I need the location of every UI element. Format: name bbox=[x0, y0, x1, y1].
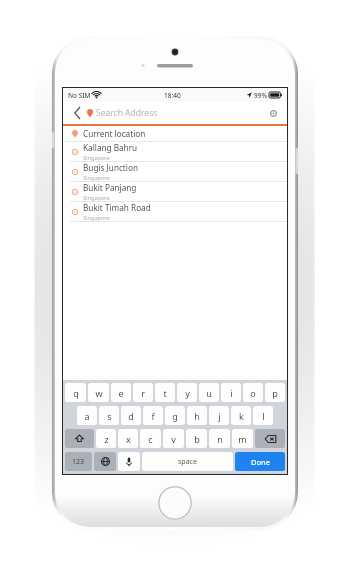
button[interactable]: x bbox=[118, 429, 138, 448]
button[interactable]: Done bbox=[235, 452, 285, 471]
staticText: 99% bbox=[254, 91, 267, 100]
staticText: Bugis Junction bbox=[83, 162, 138, 173]
button[interactable]: Bukit Panjang bbox=[63, 182, 287, 201]
button[interactable]: Bukit Timah Road bbox=[63, 202, 287, 221]
button[interactable]: c bbox=[140, 429, 161, 448]
button[interactable]: r bbox=[133, 383, 153, 402]
button[interactable]: m bbox=[232, 429, 253, 448]
button[interactable]: g bbox=[165, 406, 185, 425]
staticText: v bbox=[171, 433, 176, 445]
button[interactable]: q bbox=[65, 383, 86, 402]
staticText: 18:40 bbox=[164, 91, 181, 100]
button[interactable]: Kallang Bahru bbox=[63, 142, 287, 161]
button[interactable]: h bbox=[187, 406, 207, 425]
button[interactable]: b bbox=[186, 429, 207, 448]
staticText: n bbox=[217, 433, 223, 445]
button[interactable]: Delete bbox=[255, 429, 285, 448]
button[interactable]: u bbox=[199, 383, 219, 402]
button[interactable]: space bbox=[142, 452, 233, 471]
staticText: Kallang Bahru bbox=[83, 142, 138, 153]
staticText: Singapore bbox=[83, 154, 110, 161]
staticText: e bbox=[118, 387, 124, 399]
staticText: u bbox=[206, 387, 212, 399]
button[interactable]: 123 bbox=[65, 452, 92, 471]
staticText: l bbox=[262, 410, 265, 422]
staticText: Done bbox=[251, 457, 270, 467]
button[interactable]: Back bbox=[69, 103, 85, 123]
staticText: Search Address bbox=[96, 107, 265, 119]
button[interactable]: t bbox=[155, 383, 175, 402]
staticText: b bbox=[194, 433, 200, 445]
button[interactable]: Settings bbox=[265, 105, 281, 121]
staticText: f bbox=[151, 410, 155, 422]
staticText: y bbox=[185, 387, 190, 399]
button[interactable]: d bbox=[121, 406, 141, 425]
staticText: k bbox=[239, 410, 244, 422]
button[interactable]: f bbox=[143, 406, 163, 425]
button[interactable]: a bbox=[77, 406, 97, 425]
button[interactable]: l bbox=[253, 406, 273, 425]
button[interactable]: j bbox=[209, 406, 229, 425]
staticText: No SIM bbox=[68, 91, 91, 100]
staticText: w bbox=[95, 387, 103, 399]
staticText: g bbox=[172, 410, 178, 422]
button[interactable]: i bbox=[221, 383, 241, 402]
button[interactable]: n bbox=[209, 429, 230, 448]
button[interactable]: z bbox=[96, 429, 116, 448]
staticText: i bbox=[230, 387, 233, 399]
button[interactable]: Dictate bbox=[118, 452, 140, 471]
staticText: space bbox=[178, 457, 197, 467]
staticText: s bbox=[107, 410, 112, 422]
staticText: Singapore bbox=[83, 174, 110, 181]
staticText: t bbox=[163, 387, 167, 399]
button[interactable]: k bbox=[231, 406, 251, 425]
button[interactable]: o bbox=[243, 383, 263, 402]
staticText: x bbox=[126, 433, 131, 445]
button[interactable]: y bbox=[177, 383, 197, 402]
staticText: q bbox=[73, 387, 79, 399]
button[interactable]: s bbox=[99, 406, 119, 425]
staticText: r bbox=[141, 387, 145, 399]
button[interactable]: Bugis Junction bbox=[63, 162, 287, 181]
staticText: m bbox=[238, 433, 247, 445]
staticText: c bbox=[148, 433, 153, 445]
staticText: z bbox=[104, 433, 109, 445]
button[interactable]: p bbox=[265, 383, 285, 402]
button[interactable]: e bbox=[111, 383, 131, 402]
button[interactable]: Shift bbox=[65, 429, 94, 448]
staticText: p bbox=[272, 387, 278, 399]
staticText: o bbox=[250, 387, 256, 399]
staticText: Bukit Timah Road bbox=[83, 202, 151, 213]
button[interactable]: Current location bbox=[63, 126, 287, 141]
staticText: Bukit Panjang bbox=[83, 182, 137, 193]
button[interactable]: v bbox=[163, 429, 184, 448]
staticText: Singapore bbox=[83, 214, 110, 221]
staticText: d bbox=[128, 410, 134, 422]
staticText: j bbox=[218, 410, 221, 422]
staticText: 123 bbox=[72, 457, 85, 467]
button[interactable]: Change keyboard bbox=[94, 452, 116, 471]
staticText: a bbox=[84, 410, 90, 422]
button[interactable]: w bbox=[88, 383, 109, 402]
staticText: Current location bbox=[83, 128, 146, 139]
staticText: h bbox=[194, 410, 200, 422]
staticText: Singapore bbox=[83, 194, 110, 201]
